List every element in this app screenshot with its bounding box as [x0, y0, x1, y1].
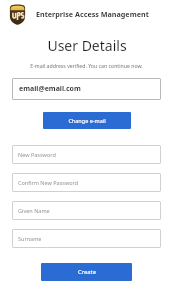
button[interactable]: email@email.com — [12, 78, 161, 100]
staticText: Change e-mail — [68, 117, 106, 124]
button[interactable]: New Password — [12, 145, 161, 164]
button[interactable]: Given Name — [12, 201, 161, 220]
staticText: New Password — [18, 151, 56, 158]
staticText: Given Name — [18, 207, 50, 214]
button[interactable]: Change e-mail — [43, 112, 131, 129]
staticText: E-mail address verified. You can continu… — [30, 62, 143, 69]
staticText: Surname — [18, 235, 42, 242]
button[interactable]: Create — [41, 263, 132, 281]
button[interactable]: Confirm New Password — [12, 173, 161, 192]
staticText: Enterprise Access Management — [36, 9, 149, 19]
button[interactable]: Surname — [12, 229, 161, 248]
other: UPS logo — [8, 4, 27, 25]
staticText: Confirm New Password — [18, 179, 79, 186]
staticText: User Details — [47, 36, 127, 55]
staticText: Create — [78, 268, 96, 276]
staticText: email@email.com — [19, 84, 81, 94]
